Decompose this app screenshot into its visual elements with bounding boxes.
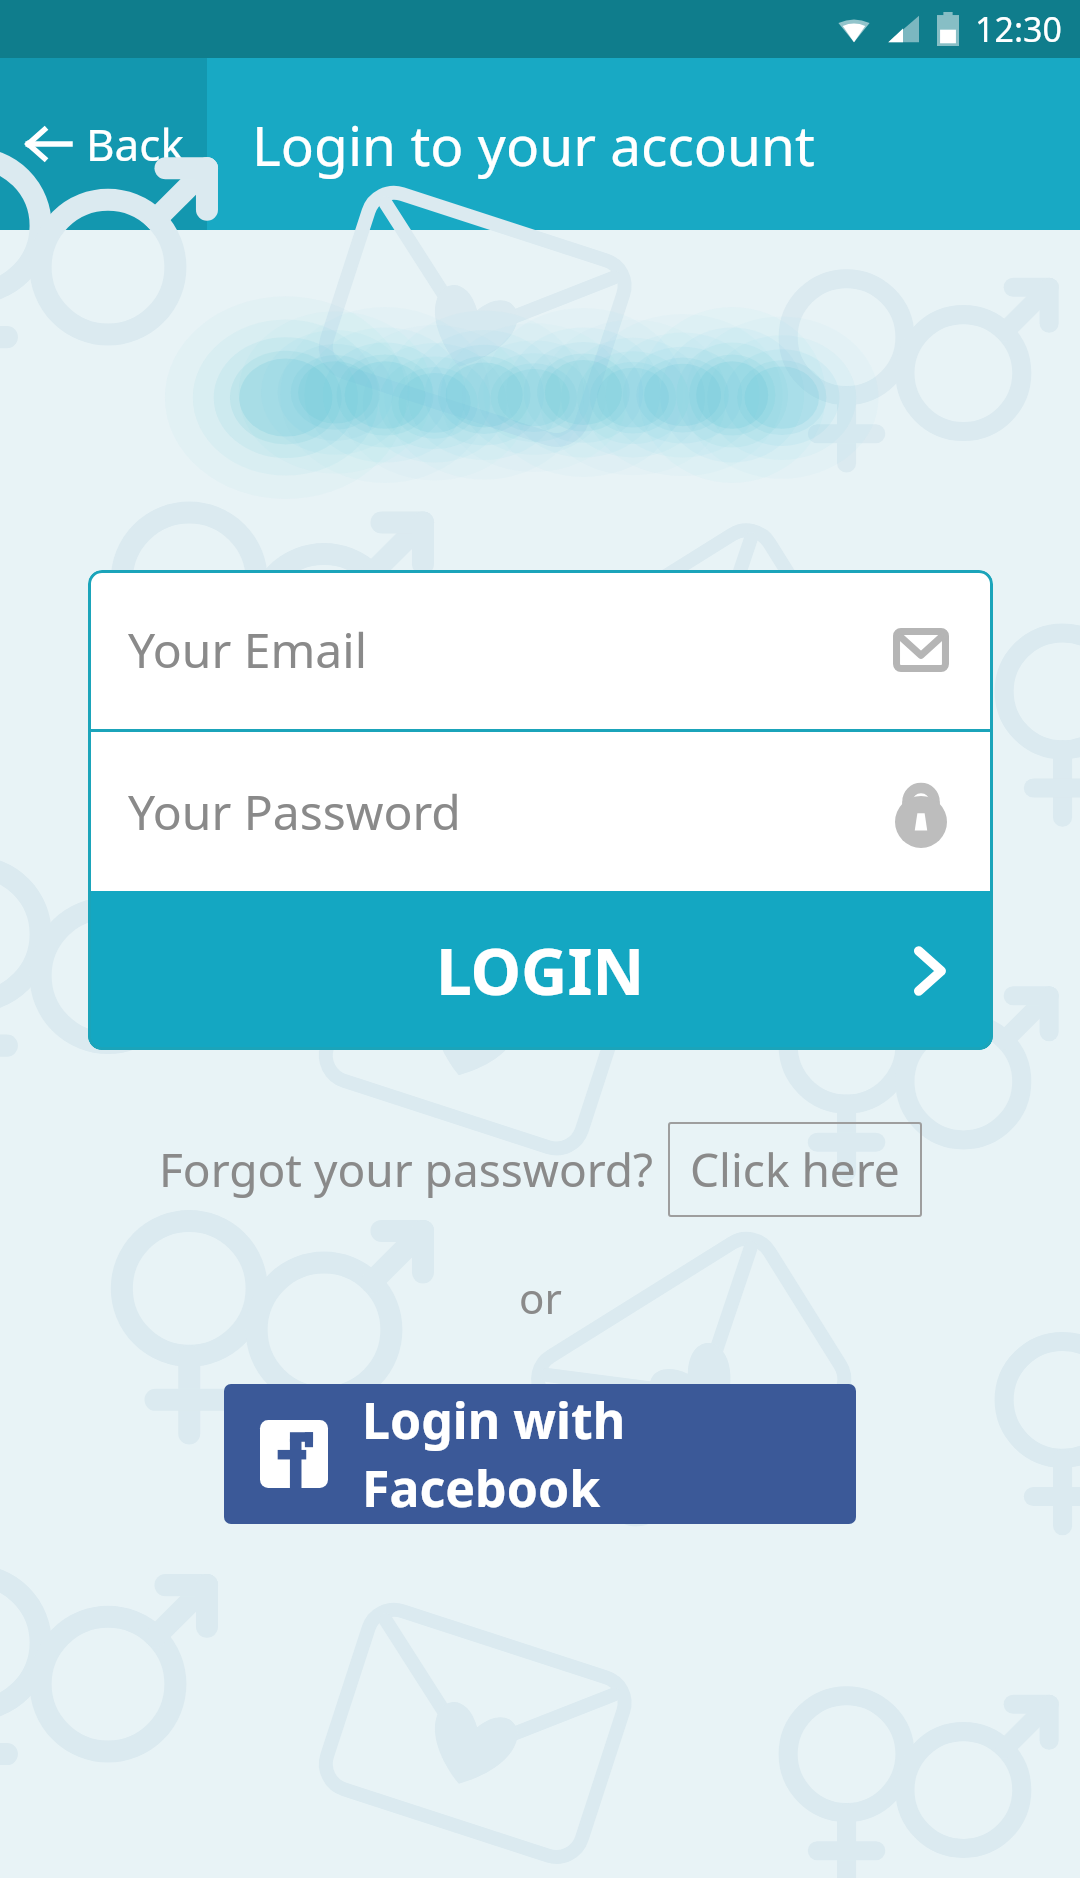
button[interactable]: Login with Facebook xyxy=(224,1384,856,1524)
staticText: Click here xyxy=(690,1138,900,1201)
staticText: Forgot your password? xyxy=(159,1138,654,1201)
staticText: Your Password xyxy=(128,779,461,844)
button[interactable]: LOGIN xyxy=(88,891,993,1050)
button[interactable]: Your Email xyxy=(88,570,993,729)
staticText: LOGIN xyxy=(436,927,645,1014)
other: Back xyxy=(26,125,70,163)
staticText: Login to your account xyxy=(252,107,815,182)
other: Email xyxy=(893,628,949,672)
button[interactable]: Your Password xyxy=(88,732,993,891)
staticText: Back xyxy=(86,114,184,174)
other: Password xyxy=(895,781,947,843)
staticText: or xyxy=(519,1269,562,1326)
button[interactable]: Back xyxy=(0,58,207,230)
staticText: Your Email xyxy=(128,617,368,682)
staticText: Login with Facebook xyxy=(362,1386,856,1522)
button[interactable]: Click here xyxy=(668,1122,922,1217)
staticText: 12:30 xyxy=(975,6,1062,52)
